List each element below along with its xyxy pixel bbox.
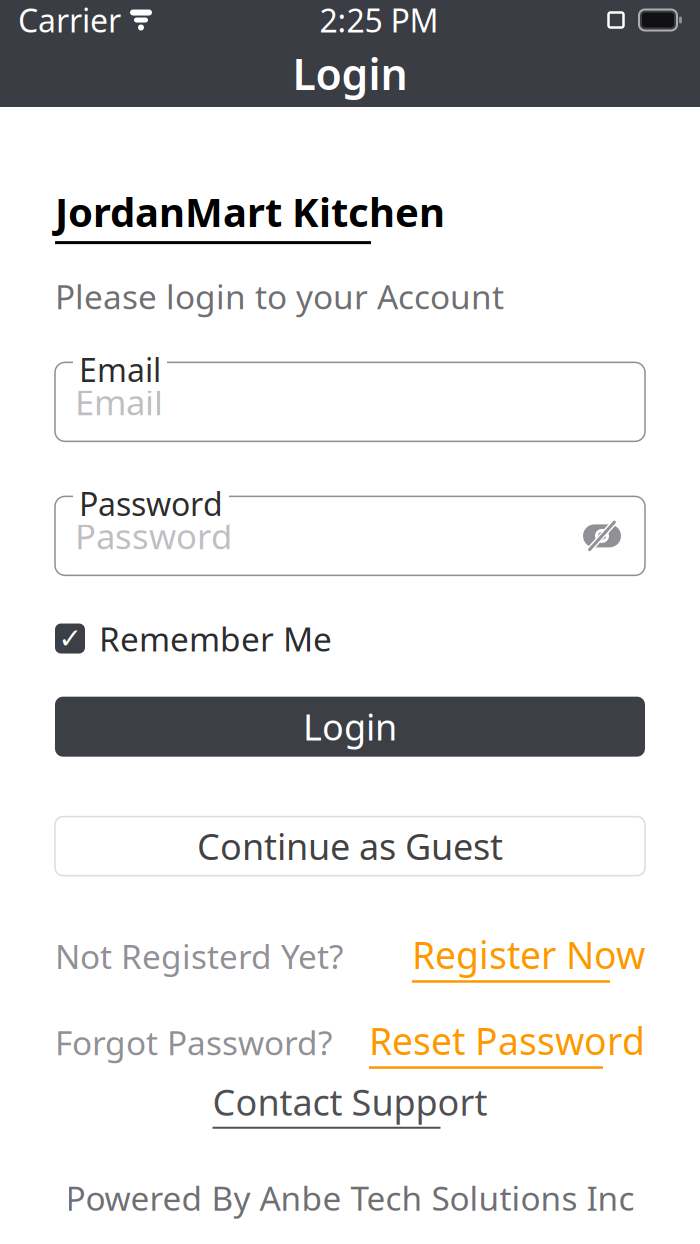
staticText: Email <box>75 379 163 425</box>
staticText: Remember Me <box>99 616 332 661</box>
button[interactable]: Register Now <box>412 930 645 983</box>
staticText: Carrier <box>18 0 121 41</box>
staticText: Login <box>303 703 397 750</box>
button[interactable]: Reset Password <box>369 1016 645 1069</box>
staticText: Powered By Anbe Tech Solutions Inc <box>65 1176 634 1220</box>
staticText: Not Registerd Yet? <box>55 934 343 978</box>
staticText: JordanMart Kitchen <box>55 185 445 238</box>
button[interactable]: Continue as Guest <box>55 817 645 876</box>
staticText: Please login to your Account <box>55 274 504 318</box>
staticText: Reset Password <box>369 1016 645 1065</box>
button[interactable]: ✓ <box>55 616 645 661</box>
staticText: Password <box>79 482 223 525</box>
staticText: Register Now <box>412 930 645 979</box>
button[interactable]: Login <box>55 697 645 757</box>
staticText: Email <box>79 348 161 391</box>
button[interactable]: Contact Support <box>212 1078 487 1129</box>
staticText: Continue as Guest <box>197 822 503 870</box>
staticText: 2:25 PM <box>319 0 438 41</box>
staticText: Forgot Password? <box>55 1020 332 1064</box>
staticText: Login <box>292 45 407 102</box>
staticText: ✓ <box>58 623 81 654</box>
staticText: Contact Support <box>212 1078 487 1126</box>
button[interactable]: Show password <box>579 516 625 556</box>
staticText: Password <box>75 513 232 559</box>
